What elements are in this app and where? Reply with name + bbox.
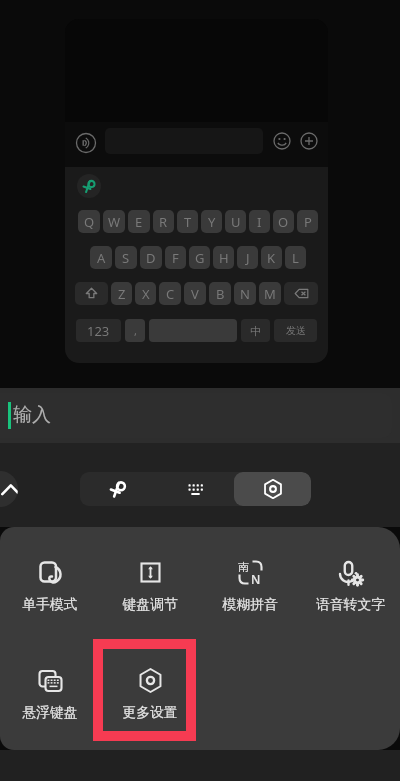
button[interactable]: 键盘调节 <box>100 531 200 639</box>
staticText: C <box>166 285 175 303</box>
staticText: 123 <box>87 322 110 340</box>
staticText: T <box>184 213 192 231</box>
staticText: 键盘调节 <box>122 596 178 613</box>
staticText: 中 <box>250 324 261 338</box>
staticText: 输入 <box>13 403 51 427</box>
button[interactable]: Settings <box>234 472 311 506</box>
staticText: 语音转文字 <box>316 596 385 613</box>
staticText: F <box>172 249 179 267</box>
staticText: Q <box>84 213 95 231</box>
button[interactable]: 悬浮键盘 <box>0 639 100 747</box>
staticText: 单手模式 <box>22 596 78 613</box>
button[interactable]: Collapse keyboard panel <box>0 471 18 507</box>
staticText: W <box>108 213 121 231</box>
button[interactable]: 更多设置 <box>100 639 200 747</box>
button[interactable]: Input method <box>80 472 157 506</box>
staticText: G <box>195 249 205 267</box>
button[interactable]: 语音转文字 <box>300 531 400 639</box>
staticText: M <box>264 285 276 303</box>
staticText: B <box>216 285 225 303</box>
staticText: J <box>246 249 250 267</box>
staticText: I <box>257 213 262 231</box>
staticText: V <box>191 285 199 303</box>
staticText: Z <box>118 285 126 303</box>
staticText: 南 <box>238 560 249 574</box>
staticText: 发送 <box>286 324 306 337</box>
staticText: E <box>135 213 143 231</box>
button[interactable]: 单手模式 <box>0 531 100 639</box>
staticText: R <box>159 213 168 231</box>
staticText: N <box>240 285 250 303</box>
staticText: U <box>231 213 241 231</box>
staticText: H <box>219 249 229 267</box>
staticText: L <box>292 249 299 267</box>
staticText: , <box>134 323 137 338</box>
staticText: 更多设置 <box>122 704 178 721</box>
staticText: S <box>122 249 130 267</box>
staticText: X <box>142 285 150 303</box>
button[interactable]: 南 <box>200 531 300 639</box>
staticText: Y <box>208 213 216 231</box>
staticText: K <box>267 249 276 267</box>
staticText: P <box>304 213 312 231</box>
button[interactable]: Keyboard layout <box>157 472 234 506</box>
staticText: D <box>146 249 156 267</box>
staticText: N <box>251 571 261 587</box>
staticText: 模糊拼音 <box>222 596 278 613</box>
staticText: O <box>278 213 289 231</box>
staticText: 悬浮键盘 <box>22 704 78 721</box>
staticText: A <box>97 249 106 267</box>
